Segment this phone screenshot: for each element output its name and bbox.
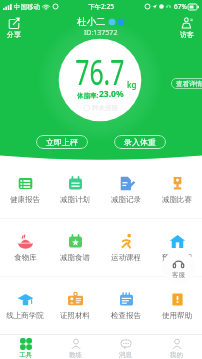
staticText: 减脂记录 — [111, 195, 141, 204]
staticText: 证照材料 — [60, 311, 90, 320]
button[interactable]: 使用帮助 — [151, 277, 202, 334]
button[interactable]: 食物库 — [0, 219, 50, 276]
button[interactable]: 查看详情 — [171, 78, 202, 89]
staticText: 体脂率: — [77, 91, 99, 100]
staticText: 减脂食谱 — [60, 253, 90, 262]
staticText: ID:137572 — [84, 28, 118, 38]
staticText: 工具 — [19, 351, 32, 359]
button[interactable]: 预约介绍 — [151, 219, 202, 276]
button[interactable]: 工具 — [0, 335, 50, 359]
button[interactable]: 证照材料 — [50, 277, 100, 334]
button[interactable]: 减脂记录 — [100, 161, 151, 218]
button[interactable]: 减脂比赛 — [151, 161, 202, 218]
staticText: 杜小二 — [77, 16, 106, 28]
button[interactable]: 线上商学院 — [0, 277, 50, 334]
button[interactable]: 访客 — [180, 17, 194, 39]
staticText: 查看详情 — [176, 80, 202, 88]
button[interactable]: 我的 — [151, 335, 202, 359]
staticText: 减脂比赛 — [162, 195, 192, 204]
staticText: 线上商学院 — [6, 311, 44, 320]
button[interactable]: 客服 — [162, 251, 195, 284]
staticText: 中国移动 — [14, 3, 40, 11]
staticText: 分享 — [7, 30, 21, 39]
staticText: 23.0% — [99, 88, 124, 100]
button[interactable]: 检查报告 — [100, 277, 151, 334]
staticText: 访客 — [180, 30, 194, 39]
staticText: 消息 — [119, 351, 132, 359]
staticText: 运动课程 — [111, 253, 141, 262]
staticText: 录入体重 — [124, 137, 156, 147]
staticText: 健康报告 — [10, 195, 40, 204]
button[interactable]: 减脂食谱 — [50, 219, 100, 276]
staticText: 减脂计划 — [60, 195, 90, 204]
staticText: 我的 — [170, 351, 183, 359]
staticText: 76.7 — [75, 47, 125, 95]
button[interactable]: 教练 — [50, 335, 100, 359]
staticText: 67% — [174, 2, 187, 11]
staticText: 教练 — [69, 351, 82, 359]
staticText: 预约介绍 — [162, 253, 192, 262]
staticText: 检查报告 — [111, 311, 141, 320]
button[interactable]: 立即上秤 — [36, 135, 88, 149]
staticText: 使用帮助 — [162, 311, 192, 320]
button[interactable]: 消息 — [100, 335, 151, 359]
button[interactable]: 录入体重 — [114, 135, 166, 149]
button[interactable]: 分享 — [7, 17, 21, 39]
staticText: 客服 — [172, 271, 185, 279]
button[interactable]: 运动课程 — [100, 219, 151, 276]
button[interactable]: 减脂计划 — [50, 161, 100, 218]
staticText: kg — [127, 79, 137, 90]
button[interactable]: 健康报告 — [0, 161, 50, 218]
staticText: 下午2:25 — [88, 2, 114, 11]
staticText: 秤未连接 — [92, 104, 118, 112]
staticText: 食物库 — [14, 253, 37, 262]
staticText: 立即上秤 — [46, 137, 78, 147]
